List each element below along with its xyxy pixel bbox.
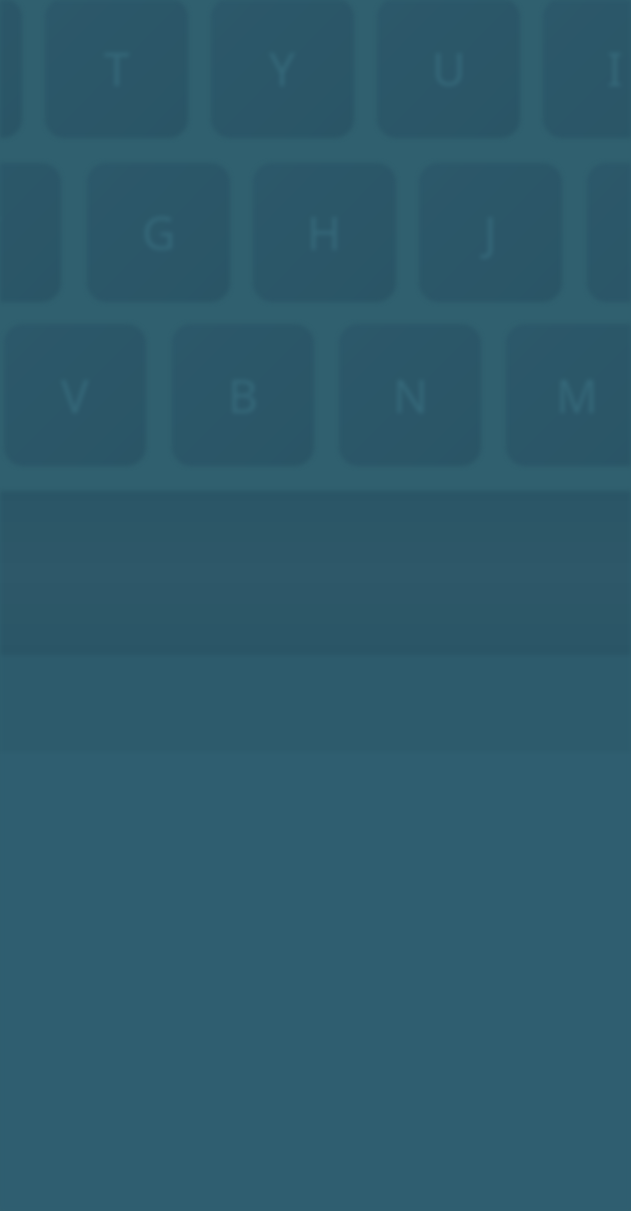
staticText: I: [607, 37, 623, 100]
staticText: U: [432, 37, 466, 100]
staticText: H: [307, 201, 342, 264]
staticText: B: [228, 364, 258, 427]
staticText: M: [556, 364, 598, 427]
other: Blurred keyboard backdrop: [0, 0, 631, 1211]
staticText: T: [104, 37, 130, 100]
staticText: G: [142, 201, 176, 264]
staticText: Y: [269, 37, 296, 100]
staticText: J: [484, 201, 497, 264]
staticText: V: [61, 364, 89, 427]
staticText: N: [393, 364, 428, 427]
